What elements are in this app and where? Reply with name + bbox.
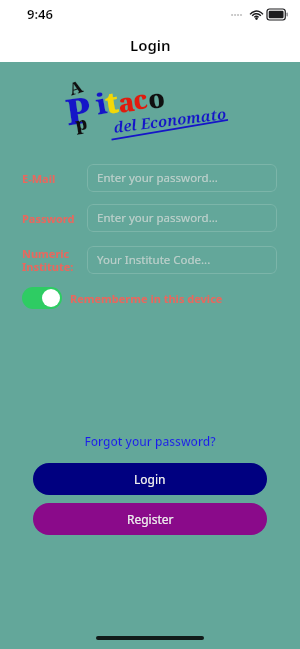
staticText: del Economato	[112, 103, 228, 137]
staticText: E-Mail	[22, 171, 56, 186]
staticText: A	[66, 74, 86, 101]
staticText: o	[146, 79, 167, 116]
staticText: p	[73, 110, 90, 137]
button[interactable]: Forgot your password?	[78, 431, 222, 451]
staticText: Enter your password...	[97, 210, 218, 226]
button[interactable]: Your Institute Code...	[87, 246, 277, 274]
staticText: Numeric Institute:	[22, 246, 74, 274]
staticText: i	[93, 83, 110, 123]
button[interactable]: Register	[33, 503, 267, 535]
staticText: c	[131, 80, 150, 117]
staticText: Login	[130, 35, 171, 55]
staticText: Login	[134, 471, 166, 487]
staticText: Register	[127, 511, 174, 527]
staticText: a	[116, 83, 137, 120]
staticText: Password	[22, 211, 75, 226]
staticText: Enter your password...	[97, 170, 218, 186]
staticText: 9:46	[27, 5, 53, 23]
button[interactable]: Enter your password...	[87, 204, 277, 232]
staticText: Your Institute Code...	[97, 252, 211, 268]
button[interactable]: Enter your password...	[87, 164, 277, 192]
staticText: P	[63, 85, 93, 136]
staticText: Forgot your password?	[84, 433, 216, 449]
staticText: Rememberme in this device	[70, 291, 223, 306]
button[interactable]: Login	[33, 463, 267, 495]
button[interactable]: Remember me toggle	[22, 287, 62, 309]
staticText: t	[102, 81, 121, 122]
